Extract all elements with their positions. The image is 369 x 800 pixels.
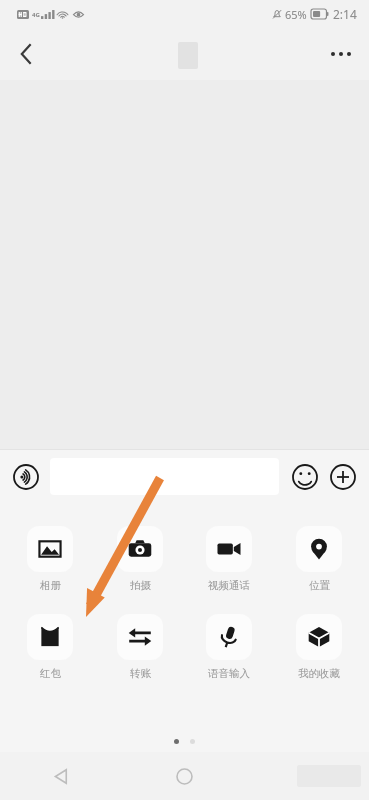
staticText: 红包 (40, 667, 61, 680)
button[interactable]: 拍摄 (104, 526, 176, 592)
staticText: 我的收藏 (298, 667, 340, 680)
button[interactable]: 语音输入 (193, 614, 265, 680)
staticText: 转账 (130, 667, 151, 680)
button[interactable]: 位置 (283, 526, 355, 592)
staticText: 语音输入 (208, 667, 250, 680)
button[interactable]: Home (123, 752, 246, 800)
button[interactable]: 转账 (104, 614, 176, 680)
button[interactable]: Emoji (289, 461, 321, 493)
button[interactable]: Recent apps (246, 752, 369, 800)
button[interactable]: Back (4, 32, 48, 76)
staticText: 2:14 (333, 6, 357, 22)
button[interactable]: Back (0, 752, 123, 800)
button[interactable]: 相册 (14, 526, 86, 592)
button[interactable]: 红包 (14, 614, 86, 680)
button[interactable]: 我的收藏 (283, 614, 355, 680)
staticText: 65% (285, 7, 307, 22)
button[interactable]: 视频通话 (193, 526, 265, 592)
staticText: 相册 (40, 579, 61, 592)
staticText: 拍摄 (130, 579, 151, 592)
staticText: 视频通话 (208, 579, 250, 592)
button[interactable]: More options (319, 32, 363, 76)
button[interactable] (50, 458, 279, 495)
staticText: 位置 (309, 579, 330, 592)
staticText: 4G (32, 11, 40, 19)
button[interactable]: More functions (327, 461, 359, 493)
button[interactable]: Voice message (10, 461, 42, 493)
